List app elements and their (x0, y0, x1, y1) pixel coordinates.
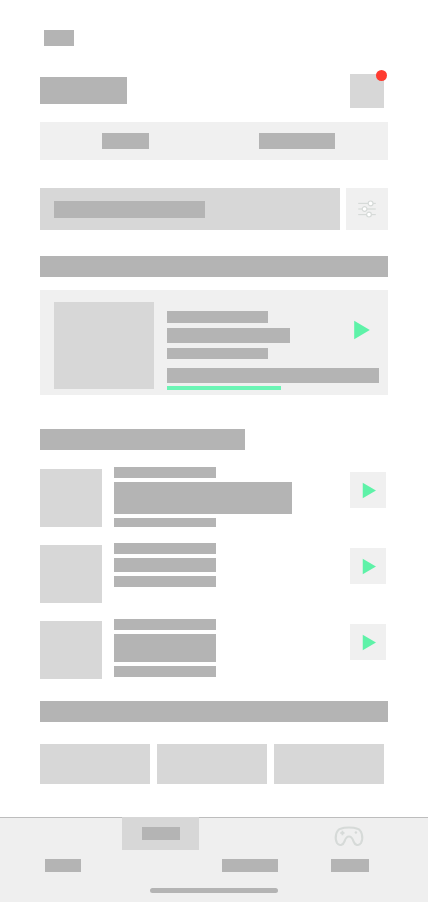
button[interactable]: Profile (350, 74, 384, 108)
button[interactable]: Filter (346, 188, 388, 230)
button[interactable]: Games (315, 817, 385, 902)
button[interactable] (122, 817, 199, 902)
button[interactable]: Play (40, 543, 388, 603)
button[interactable]: Play (40, 619, 388, 679)
button[interactable] (205, 817, 285, 902)
button[interactable] (28, 817, 98, 902)
button[interactable]: Play (350, 624, 386, 660)
button[interactable]: Play (40, 467, 388, 527)
button[interactable]: Play (350, 548, 386, 584)
button[interactable] (40, 188, 340, 230)
button[interactable]: Play (350, 472, 386, 508)
button[interactable]: Play (350, 319, 372, 341)
button[interactable]: Play (40, 290, 388, 395)
